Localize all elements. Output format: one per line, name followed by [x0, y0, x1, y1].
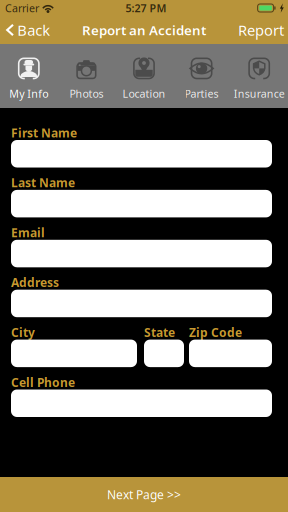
staticText: State: [144, 324, 175, 340]
staticText: Carrier: [5, 1, 39, 15]
button[interactable]: [11, 190, 272, 217]
button[interactable]: Parties: [173, 44, 230, 108]
staticText: Cell Phone: [11, 374, 75, 390]
staticText: Email: [11, 225, 45, 240]
button[interactable]: [189, 340, 272, 367]
staticText: First Name: [11, 125, 77, 141]
staticText: Photos: [69, 86, 103, 101]
button[interactable]: Location: [115, 44, 173, 108]
staticText: City: [11, 324, 35, 340]
staticText: Location: [122, 86, 165, 101]
button[interactable]: [11, 240, 272, 267]
button[interactable]: [11, 290, 272, 317]
staticText: Address: [11, 274, 59, 290]
button[interactable]: [11, 389, 272, 417]
staticText: 5:27 PM: [125, 1, 166, 15]
button[interactable]: My Info: [0, 44, 58, 108]
staticText: Next Page >>: [107, 486, 181, 502]
button[interactable]: Report: [232, 16, 288, 44]
button[interactable]: [11, 340, 137, 367]
staticText: Back: [17, 20, 50, 40]
staticText: Report an Accident: [82, 21, 206, 39]
staticText: Last Name: [11, 175, 75, 191]
staticText: Zip Code: [189, 324, 242, 340]
button[interactable]: Next Page >>: [0, 477, 288, 512]
staticText: My Info: [9, 86, 48, 101]
button[interactable]: [144, 340, 184, 367]
staticText: Parties: [185, 86, 219, 101]
button[interactable]: [11, 140, 272, 167]
staticText: Report: [238, 20, 284, 40]
button[interactable]: Back: [0, 16, 56, 44]
button[interactable]: Photos: [58, 44, 115, 108]
staticText: Insurance: [234, 86, 285, 101]
button[interactable]: Insurance: [230, 44, 288, 108]
